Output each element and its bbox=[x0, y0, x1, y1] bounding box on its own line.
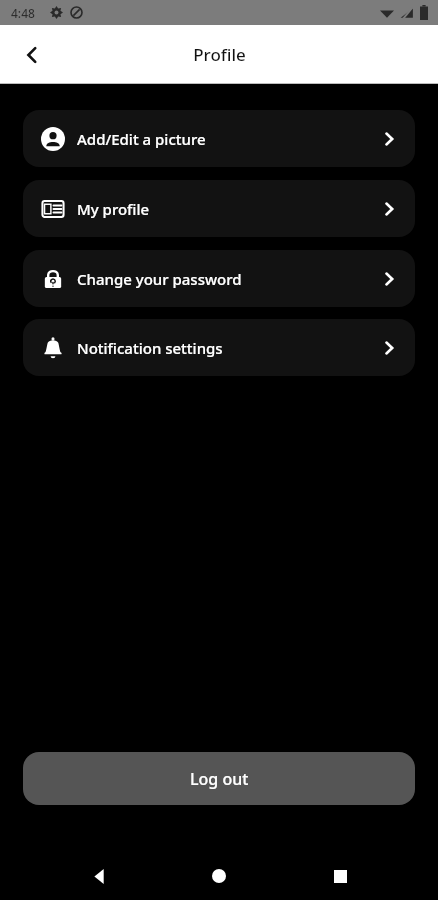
staticText: My profile bbox=[77, 199, 381, 219]
button[interactable]: My profile bbox=[23, 180, 415, 237]
staticText: Log out bbox=[190, 768, 249, 790]
button[interactable]: Back bbox=[10, 33, 54, 77]
button[interactable]: Add/Edit a picture bbox=[23, 110, 415, 167]
button[interactable]: Change your password bbox=[23, 250, 415, 307]
staticText: 4:48 bbox=[11, 5, 35, 21]
button[interactable]: Back bbox=[77, 854, 121, 898]
staticText: Notification settings bbox=[77, 338, 381, 358]
button[interactable]: Log out bbox=[23, 752, 415, 805]
staticText: Change your password bbox=[77, 269, 381, 289]
staticText: Add/Edit a picture bbox=[77, 129, 381, 149]
button[interactable]: Notification settings bbox=[23, 319, 415, 376]
staticText: Profile bbox=[193, 43, 246, 66]
button[interactable]: Recent apps bbox=[318, 854, 362, 898]
button[interactable]: Home bbox=[197, 854, 241, 898]
